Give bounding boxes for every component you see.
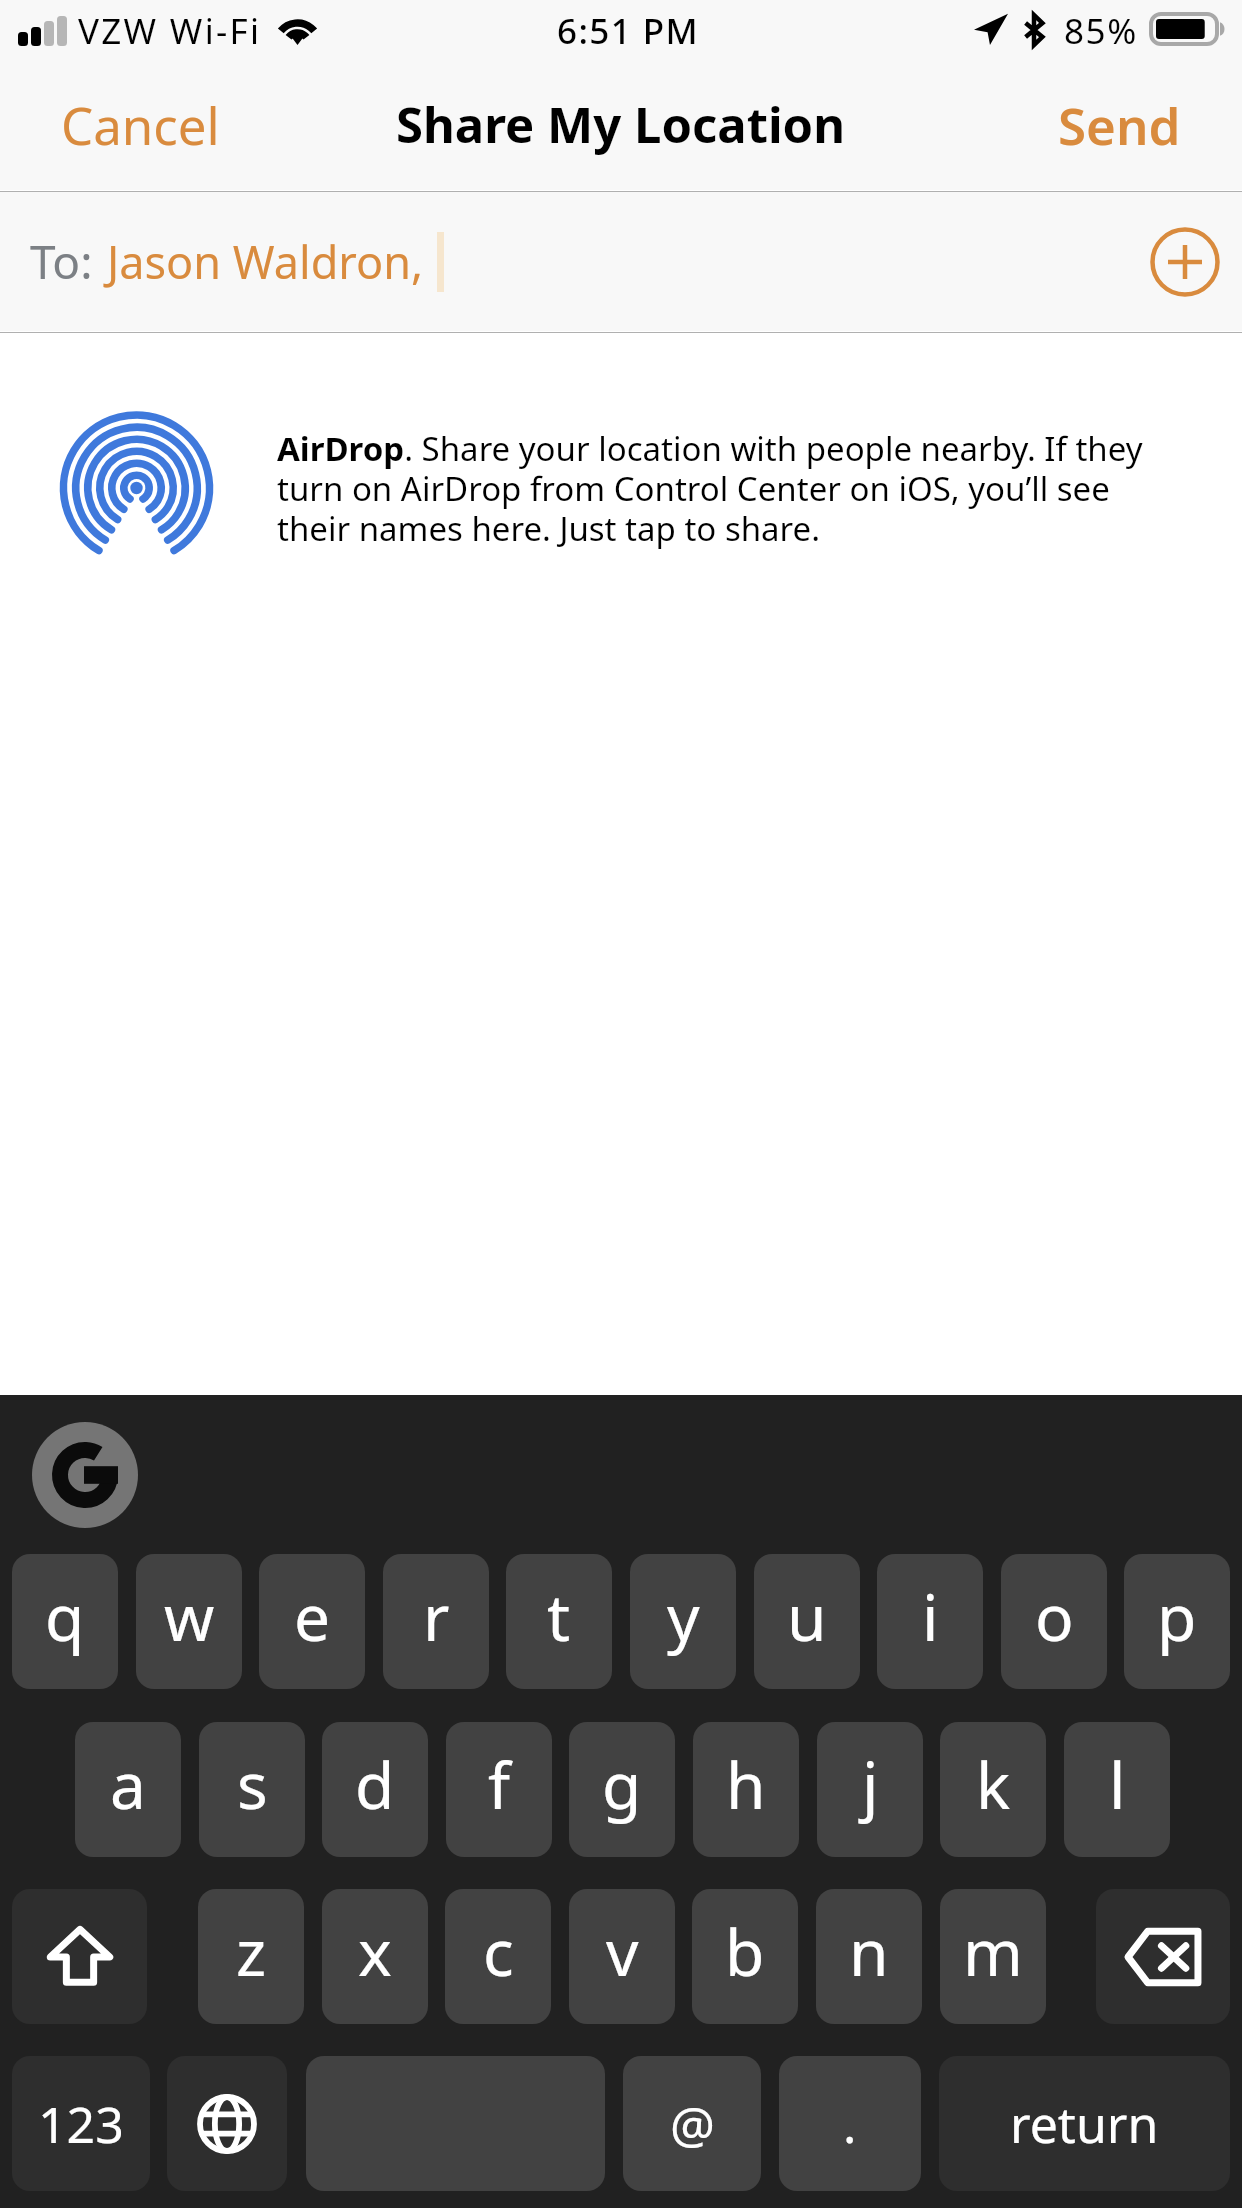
- staticText: w: [164, 1573, 215, 1660]
- button[interactable]: w: [136, 1554, 242, 1689]
- button[interactable]: h: [693, 1722, 799, 1857]
- staticText: p: [1157, 1573, 1197, 1660]
- button[interactable]: @: [623, 2056, 761, 2191]
- button[interactable]: d: [322, 1722, 428, 1857]
- button[interactable]: r: [383, 1554, 489, 1689]
- staticText: q: [45, 1573, 85, 1660]
- button[interactable]: e: [259, 1554, 365, 1689]
- staticText: VZW Wi-Fi: [78, 7, 262, 55]
- button[interactable]: p: [1124, 1554, 1230, 1689]
- staticText: t: [547, 1573, 571, 1660]
- button[interactable]: t: [506, 1554, 612, 1689]
- other: Change keyboard language: [196, 2093, 258, 2155]
- button[interactable]: v: [569, 1889, 675, 2024]
- staticText: AirDrop. Share your location with people…: [277, 426, 1167, 551]
- button[interactable]: Change keyboard language: [167, 2056, 287, 2191]
- staticText: n: [849, 1908, 889, 1995]
- button[interactable]: Backspace: [1096, 1889, 1230, 2024]
- staticText: r: [423, 1573, 450, 1660]
- button[interactable]: z: [198, 1889, 304, 2024]
- button[interactable]: Cancel: [0, 62, 260, 190]
- staticText: d: [355, 1741, 395, 1828]
- button[interactable]: Shift: [12, 1889, 147, 2024]
- button[interactable]: Google search: [32, 1422, 138, 1528]
- button[interactable]: x: [322, 1889, 428, 2024]
- button[interactable]: return: [939, 2056, 1230, 2191]
- staticText: k: [976, 1741, 1011, 1828]
- staticText: b: [725, 1908, 765, 1995]
- staticText: Share My Location: [396, 91, 846, 158]
- button[interactable]: k: [940, 1722, 1046, 1857]
- button[interactable]: y: [630, 1554, 736, 1689]
- staticText: u: [787, 1573, 827, 1660]
- staticText: o: [1035, 1573, 1074, 1660]
- button[interactable]: f: [446, 1722, 552, 1857]
- button[interactable]: q: [12, 1554, 118, 1689]
- staticText: y: [667, 1573, 700, 1660]
- staticText: v: [606, 1908, 639, 1995]
- button[interactable]: j: [817, 1722, 923, 1857]
- button[interactable]: Add contact: [1141, 218, 1229, 306]
- button[interactable]: s: [199, 1722, 305, 1857]
- staticText: c: [483, 1908, 514, 1995]
- staticText: l: [1109, 1741, 1126, 1828]
- button[interactable]: n: [816, 1889, 922, 2024]
- other: Shift: [49, 1927, 111, 1987]
- button[interactable]: o: [1001, 1554, 1107, 1689]
- staticText: a: [110, 1741, 146, 1828]
- button[interactable]: u: [754, 1554, 860, 1689]
- staticText: f: [488, 1741, 511, 1828]
- staticText: return: [1010, 2090, 1159, 2158]
- staticText: To:: [30, 230, 93, 293]
- staticText: h: [726, 1741, 766, 1828]
- staticText: s: [237, 1741, 268, 1828]
- staticText: 85%: [1064, 7, 1138, 55]
- staticText: j: [862, 1741, 879, 1828]
- staticText: 6:51 PM: [557, 7, 699, 55]
- button[interactable]: c: [445, 1889, 551, 2024]
- other: Backspace: [1125, 1929, 1201, 1985]
- staticText: 123: [38, 2090, 124, 2158]
- staticText: g: [602, 1741, 642, 1828]
- staticText: m: [963, 1908, 1023, 1995]
- button[interactable]: a: [75, 1722, 181, 1857]
- button[interactable]: .: [779, 2056, 921, 2191]
- staticText: x: [358, 1908, 392, 1995]
- staticText: z: [236, 1908, 267, 1995]
- button[interactable]: g: [569, 1722, 675, 1857]
- button[interactable]: 123: [12, 2056, 150, 2191]
- staticText: e: [294, 1573, 331, 1660]
- staticText: .: [843, 2090, 857, 2158]
- staticText: i: [922, 1573, 939, 1660]
- staticText: Send: [1058, 90, 1181, 159]
- button[interactable]: l: [1064, 1722, 1170, 1857]
- button[interactable]: Send: [1018, 62, 1242, 190]
- button[interactable]: b: [692, 1889, 798, 2024]
- staticText: Jason Waldron,: [107, 231, 424, 292]
- button[interactable]: i: [877, 1554, 983, 1689]
- staticText: Cancel: [61, 90, 220, 159]
- staticText: @: [670, 2090, 715, 2158]
- button[interactable]: m: [940, 1889, 1046, 2024]
